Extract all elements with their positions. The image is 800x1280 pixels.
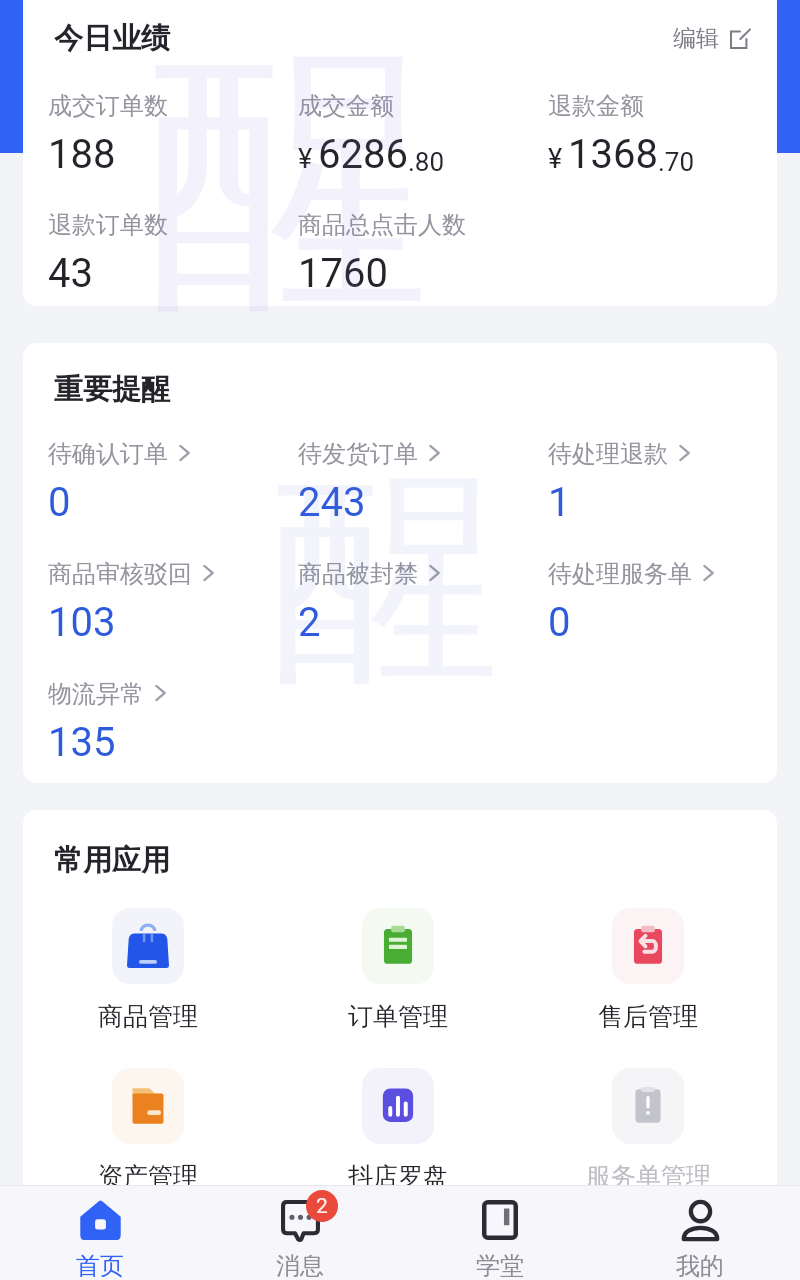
staticText: 服务单管理 [586, 1161, 711, 1192]
button[interactable]: 抖店罗盘 [273, 1068, 523, 1192]
staticText: 抖店罗盘 [348, 1161, 448, 1192]
staticText: 2 [298, 599, 321, 646]
staticText: 188 [48, 131, 116, 178]
staticText: 103 [48, 599, 116, 646]
staticText: 待确认订单 [48, 439, 168, 469]
staticText: .80 [408, 147, 445, 177]
other: 我的 [680, 1200, 721, 1240]
staticText: 1368 [568, 131, 658, 178]
button[interactable]: 商品管理 [23, 908, 273, 1032]
staticText: 6286 [318, 131, 408, 178]
staticText: 待处理服务单 [548, 559, 692, 589]
other: 首页 [79, 1200, 122, 1240]
staticText: 1 [548, 479, 571, 526]
staticText: 退款金额 [548, 91, 644, 121]
staticText: ¥ [548, 143, 563, 175]
button[interactable]: 物流异常 [48, 679, 298, 766]
button[interactable]: 订单管理 [273, 908, 523, 1032]
button[interactable]: 售后管理 [523, 908, 773, 1032]
staticText: 商品总点击人数 [298, 210, 466, 240]
staticText: 1760 [298, 250, 388, 297]
button[interactable]: 商品审核驳回 [48, 559, 298, 646]
staticText: 重要提醒 [54, 371, 170, 408]
staticText: 待处理退款 [548, 439, 668, 469]
staticText: 退款订单数 [48, 210, 168, 240]
staticText: 售后管理 [598, 1001, 698, 1032]
button[interactable]: 待确认订单 [48, 439, 298, 526]
button[interactable]: 消息 [200, 1185, 400, 1280]
staticText: 135 [48, 719, 116, 766]
button[interactable]: 学堂 [400, 1185, 600, 1280]
staticText: 醒 [148, 2, 430, 357]
staticText: 243 [298, 479, 366, 526]
staticText: 0 [48, 479, 71, 526]
staticText: 醒 [272, 434, 500, 721]
staticText: 常用应用 [54, 842, 170, 879]
staticText: 物流异常 [48, 679, 144, 709]
staticText: 商品被封禁 [298, 559, 418, 589]
staticText: 待发货订单 [298, 439, 418, 469]
button[interactable]: 资产管理 [23, 1068, 273, 1192]
staticText: 编辑 [673, 24, 719, 53]
other: 学堂 [482, 1200, 518, 1240]
button[interactable]: 待发货订单 [298, 439, 548, 526]
staticText: 商品审核驳回 [48, 559, 192, 589]
button[interactable]: 首页 [0, 1185, 200, 1280]
button[interactable]: 待处理服务单 [548, 559, 777, 646]
staticText: 商品管理 [98, 1001, 198, 1032]
button[interactable]: 商品被封禁 [298, 559, 548, 646]
staticText: 资产管理 [98, 1161, 198, 1192]
button[interactable]: 我的 [600, 1185, 800, 1280]
staticText: 我的 [676, 1251, 724, 1280]
staticText: 成交金额 [298, 91, 394, 121]
staticText: 首页 [76, 1251, 124, 1280]
staticText: 学堂 [476, 1251, 524, 1280]
staticText: 43 [48, 250, 93, 297]
staticText: 2 [316, 1194, 328, 1219]
button[interactable]: 服务单管理 [523, 1068, 773, 1192]
staticText: 今日业绩 [54, 20, 170, 57]
staticText: .70 [658, 147, 695, 177]
staticText: 订单管理 [348, 1001, 448, 1032]
other: 编辑 [730, 29, 750, 49]
staticText: 成交订单数 [48, 91, 168, 121]
staticText: 消息 [276, 1251, 324, 1280]
button[interactable]: 待处理退款 [548, 439, 777, 526]
button[interactable]: 编辑 [669, 16, 754, 61]
staticText: 0 [548, 599, 571, 646]
other: 消息 [281, 1200, 320, 1240]
staticText: ¥ [298, 143, 313, 175]
